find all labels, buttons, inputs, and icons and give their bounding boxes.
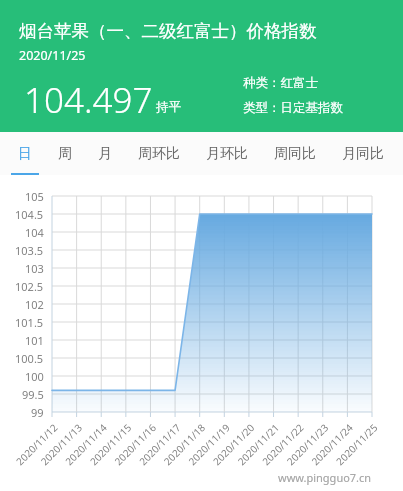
staticText: 持平 <box>156 99 181 115</box>
staticText: 周同比 <box>274 145 316 163</box>
button[interactable]: 月 <box>85 132 125 175</box>
staticText: 类型：日定基指数 <box>243 100 343 116</box>
staticText: 月 <box>98 145 112 163</box>
staticText: 种类：红富士 <box>243 75 318 91</box>
button[interactable]: 月同比 <box>329 132 397 175</box>
staticText: 烟台苹果（一、二级红富士）价格指数 <box>19 20 317 42</box>
staticText: 日 <box>18 145 32 163</box>
button[interactable]: 周同比 <box>261 132 329 175</box>
staticText: 周环比 <box>138 145 180 163</box>
staticText: 月同比 <box>342 145 384 163</box>
staticText: 周 <box>58 145 72 163</box>
staticText: 月环比 <box>206 145 248 163</box>
button[interactable]: 月环比 <box>193 132 261 175</box>
button[interactable]: 周 <box>45 132 85 175</box>
staticText: 2020/11/25 <box>19 47 86 64</box>
button[interactable]: 日 <box>4 132 45 175</box>
button[interactable]: 周环比 <box>125 132 193 175</box>
staticText: 104.497 <box>24 76 153 124</box>
